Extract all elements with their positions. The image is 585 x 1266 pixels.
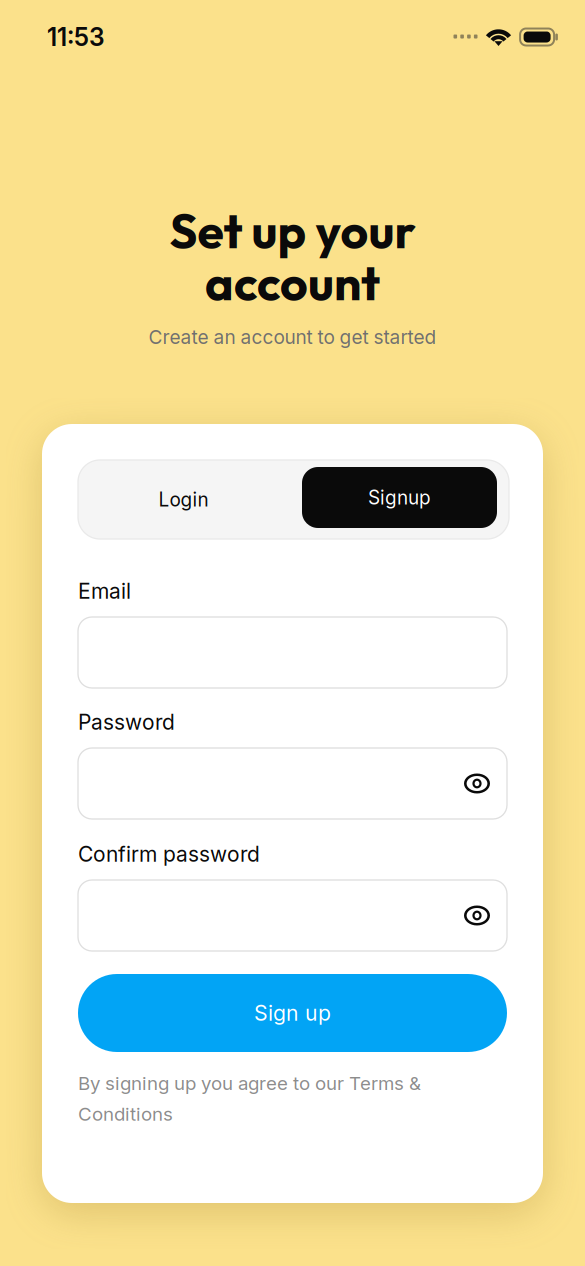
staticText: Login [158,488,208,511]
staticText: Sign up [254,1000,331,1026]
staticText: account [205,252,380,313]
staticText: Set up your [169,200,415,261]
staticText: Confirm password [78,841,260,867]
button[interactable]: Login [78,460,289,539]
staticText: Email [78,578,131,604]
button[interactable]: Show Confirm password [464,880,507,951]
staticText: By signing up you agree to our Terms & C… [78,1072,421,1125]
staticText: Signup [368,486,431,509]
button[interactable]: Show Password [464,748,507,819]
button[interactable]: Sign up [78,974,507,1052]
staticText: Create an account to get started [148,325,436,349]
button[interactable]: Signup [302,467,497,532]
staticText: 11:53 [47,22,105,52]
staticText: Password [78,709,175,735]
